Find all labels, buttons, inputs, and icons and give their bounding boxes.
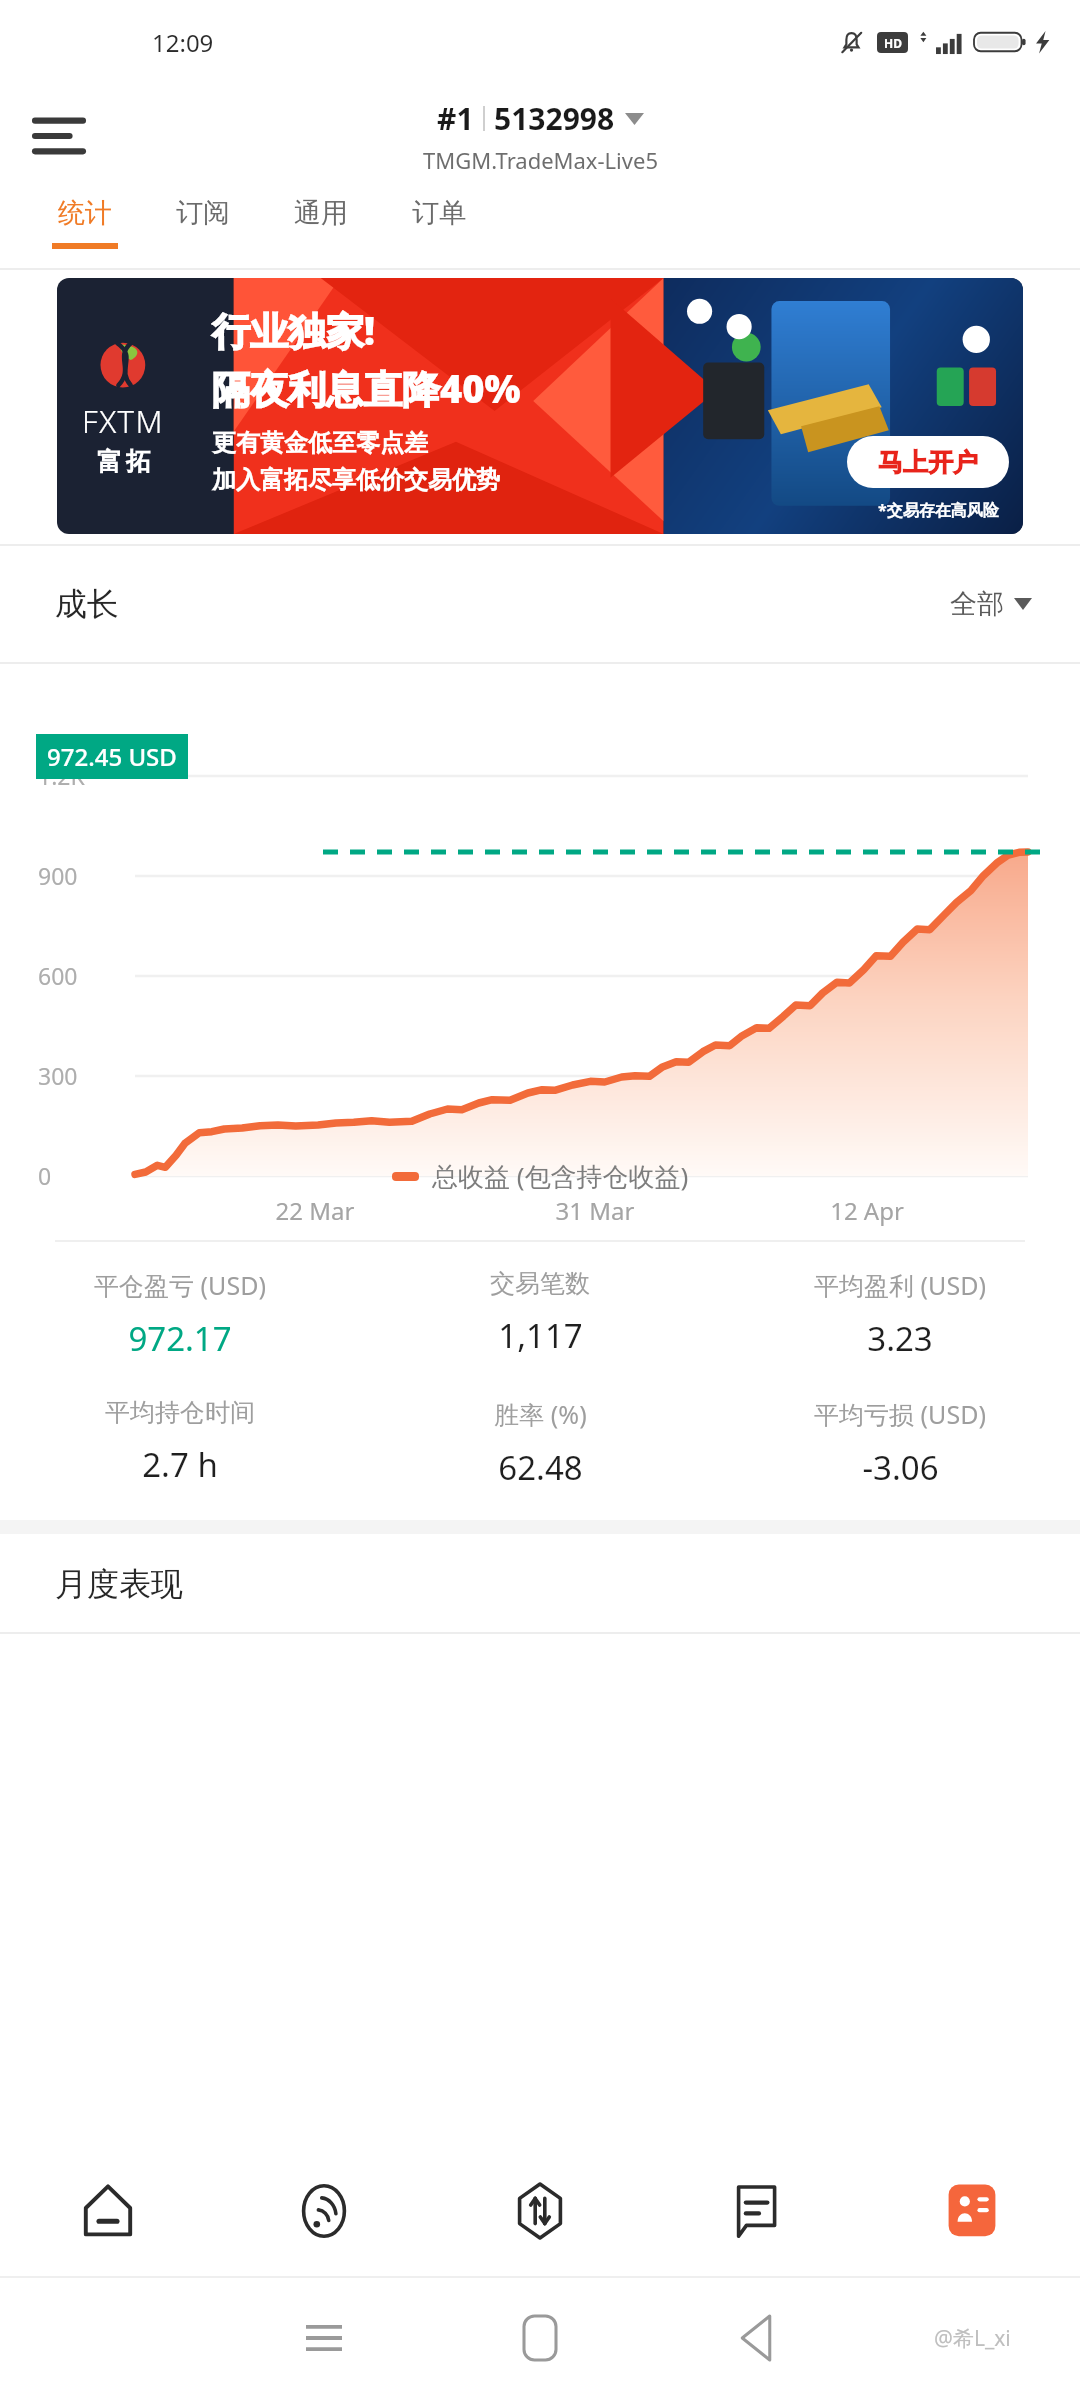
staticText: 隔夜利息直降40% (212, 362, 521, 414)
staticText: 2.7 h (142, 1442, 218, 1487)
staticText: 1.2K (38, 760, 85, 791)
staticText: 全部 (950, 587, 1004, 621)
button[interactable]: 马上开户 (847, 436, 1009, 488)
button[interactable]: 统计 (26, 188, 144, 270)
button[interactable]: 平均持仓时间 (0, 1397, 360, 1487)
staticText: 12 Apr (772, 1194, 962, 1227)
staticText: 300 (38, 1060, 78, 1091)
staticText: 月度表现 (55, 1564, 183, 1604)
button[interactable]: Messages (648, 2146, 864, 2276)
button[interactable]: 平仓盈亏 (USD) (0, 1268, 360, 1361)
button[interactable]: 订单 (380, 188, 498, 270)
staticText: 胜率 (%) (494, 1397, 587, 1431)
staticText: 22 Mar (220, 1194, 410, 1227)
button[interactable]: Recents (216, 2276, 432, 2400)
button[interactable]: Home (432, 2276, 648, 2400)
staticText: 总收益 (包含持仓收益) (432, 1158, 689, 1194)
staticText: 62.48 (498, 1445, 583, 1490)
button[interactable]: Profile (864, 2146, 1080, 2276)
staticText: 3.23 (867, 1316, 933, 1361)
staticText: TMGM.TradeMax-Live5 (423, 145, 658, 175)
staticText: 31 Mar (500, 1194, 690, 1227)
staticText: 加入富拓尽享低价交易优势 (212, 465, 500, 495)
staticText: @希L_xi (934, 2324, 1011, 2353)
staticText: 972.17 (128, 1316, 232, 1361)
staticText: 统计 (58, 196, 112, 230)
staticText: 平均盈利 (USD) (814, 1268, 986, 1302)
staticText: -3.06 (862, 1445, 939, 1490)
button[interactable]: Trade (432, 2146, 648, 2276)
button[interactable]: 全部 (950, 587, 1032, 621)
button[interactable]: 通用 (262, 188, 380, 270)
staticText: 900 (38, 860, 78, 891)
staticText: 1,117 (498, 1313, 583, 1358)
button[interactable]: Back (648, 2276, 864, 2400)
staticText: 5132998 (494, 98, 615, 139)
staticText: 行业独家! (212, 304, 376, 356)
staticText: *交易存在高风险 (878, 499, 999, 521)
staticText: 成长 (55, 584, 119, 624)
button[interactable]: 平均盈利 (USD) (720, 1268, 1080, 1361)
staticText: 平均亏损 (USD) (814, 1397, 986, 1431)
button[interactable]: Home (0, 2146, 216, 2276)
staticText: 马上开户 (878, 447, 978, 478)
button[interactable]: 平均亏损 (USD) (720, 1397, 1080, 1490)
staticText: 富拓 (95, 446, 153, 477)
button[interactable]: 订阅 (144, 188, 262, 270)
staticText: 交易笔数 (490, 1268, 590, 1299)
staticText: 更有黄金低至零点差 (212, 428, 428, 458)
staticText: 平均持仓时间 (105, 1397, 255, 1428)
staticText: 订单 (412, 196, 466, 230)
button[interactable]: 胜率 (%) (360, 1397, 720, 1490)
staticText: 通用 (294, 196, 348, 230)
button[interactable]: Menu (20, 97, 98, 175)
staticText: 600 (38, 960, 78, 991)
staticText: FXTM (82, 400, 165, 442)
staticText: 订阅 (176, 196, 230, 230)
button[interactable]: 交易笔数 (360, 1268, 720, 1358)
staticText: 12:09 (152, 26, 214, 59)
button[interactable]: Quotes (216, 2146, 432, 2276)
staticText: 0 (38, 1160, 52, 1191)
staticText: 972.45 USD (47, 740, 177, 773)
staticText: #1 (437, 98, 474, 139)
button[interactable]: #1 (423, 98, 658, 175)
staticText: 平仓盈亏 (USD) (94, 1268, 266, 1302)
staticText: HD (884, 35, 902, 51)
button[interactable]: FXTM (57, 278, 1023, 534)
